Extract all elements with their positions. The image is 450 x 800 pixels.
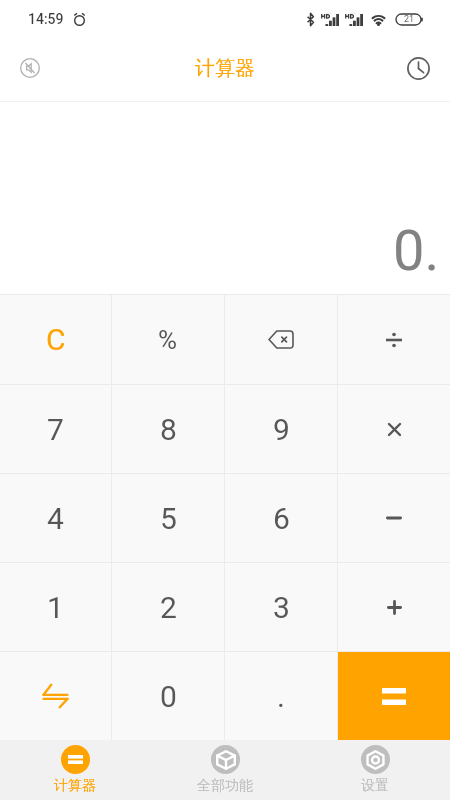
staticText: 21 xyxy=(404,14,415,25)
staticText: 7 xyxy=(47,412,64,447)
button[interactable]: Equals xyxy=(338,652,450,740)
staticText: C xyxy=(46,322,66,357)
button[interactable]: Plus xyxy=(338,563,450,651)
staticText: 0 xyxy=(160,679,177,714)
button[interactable]: Backspace xyxy=(225,295,337,384)
button[interactable]: 8 xyxy=(112,385,224,473)
staticText: 6 xyxy=(273,501,290,536)
staticText: 4 xyxy=(47,501,64,536)
staticText: 设置 xyxy=(361,777,389,795)
button[interactable]: 5 xyxy=(112,474,224,562)
staticText: . xyxy=(277,679,285,714)
staticText: 8 xyxy=(160,412,177,447)
button[interactable]: 设置 xyxy=(300,740,450,800)
staticText: 5 xyxy=(160,501,177,536)
button[interactable]: . xyxy=(225,652,337,740)
button[interactable]: 计算器 xyxy=(0,740,150,800)
staticText: 全部功能 xyxy=(197,777,253,795)
button[interactable]: 7 xyxy=(0,385,111,473)
button[interactable]: % xyxy=(112,295,224,384)
button[interactable]: History xyxy=(394,44,442,92)
button[interactable]: 0 xyxy=(112,652,224,740)
staticText: 1 xyxy=(47,590,64,625)
button[interactable]: Minus xyxy=(338,474,450,562)
button[interactable]: 4 xyxy=(0,474,111,562)
button[interactable]: 1 xyxy=(0,563,111,651)
button[interactable]: 9 xyxy=(225,385,337,473)
staticText: 9 xyxy=(273,412,290,447)
staticText: 计算器 xyxy=(195,56,255,81)
button[interactable]: Convert xyxy=(0,652,111,740)
staticText: 2 xyxy=(160,590,177,625)
button[interactable]: 6 xyxy=(225,474,337,562)
button[interactable]: Divide xyxy=(338,295,450,384)
staticText: 3 xyxy=(273,590,290,625)
button[interactable]: Multiply xyxy=(338,385,450,473)
staticText: % xyxy=(158,325,178,355)
staticText: 0. xyxy=(393,218,440,284)
button[interactable]: 2 xyxy=(112,563,224,651)
staticText: 计算器 xyxy=(54,777,96,795)
button[interactable]: C xyxy=(0,295,111,384)
button[interactable]: 全部功能 xyxy=(150,740,300,800)
button[interactable]: Mute xyxy=(6,44,54,92)
button[interactable]: 3 xyxy=(225,563,337,651)
staticText: 14:59 xyxy=(28,11,64,27)
